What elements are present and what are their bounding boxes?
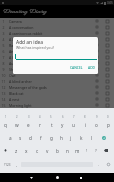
staticText: Black cat (9, 91, 96, 96)
button[interactable]: b (52, 144, 62, 157)
button[interactable]: w (11, 118, 22, 131)
button[interactable]: y (57, 118, 68, 131)
button[interactable]: o (91, 118, 102, 131)
button[interactable]: 8 (0, 60, 114, 66)
button[interactable]: Remove idea (106, 56, 109, 59)
button[interactable]: p (103, 118, 114, 131)
button[interactable]: Remove idea (106, 92, 109, 95)
button[interactable]: Home (52, 173, 62, 182)
button[interactable]: Remove idea (106, 44, 109, 47)
button[interactable]: q (0, 118, 11, 131)
button[interactable]: 10 (0, 72, 114, 78)
staticText: j (70, 135, 72, 141)
button[interactable]: Back (26, 173, 36, 182)
staticText: 13 (0, 91, 8, 96)
button[interactable]: 14 (0, 96, 114, 102)
button[interactable]: 6 (0, 48, 114, 54)
button[interactable]: 2 (0, 24, 114, 30)
button[interactable]: 15 (0, 102, 114, 108)
button[interactable]: Emoji (104, 158, 113, 171)
button[interactable]: 12 (0, 84, 114, 90)
button[interactable]: Recent apps (76, 173, 86, 182)
button[interactable]: 4 (0, 36, 114, 42)
button[interactable]: Remove idea (106, 20, 109, 23)
staticText: m (75, 148, 80, 154)
button[interactable]: Remove idea (106, 50, 109, 53)
button[interactable]: Enter (98, 131, 109, 144)
button[interactable]: s (15, 131, 25, 144)
button[interactable]: i (80, 118, 91, 131)
button[interactable]: ! (82, 144, 91, 157)
button[interactable]: 5 (0, 42, 114, 48)
button[interactable]: Remove idea (106, 98, 109, 101)
button[interactable]: Remove idea (106, 26, 109, 29)
staticText: q (4, 122, 7, 128)
button[interactable]: 9 (0, 66, 114, 72)
button[interactable]: Remove idea (106, 68, 109, 71)
button[interactable]: Shift (0, 144, 11, 157)
button[interactable]: ?123 (1, 158, 14, 171)
button[interactable]: v (42, 144, 52, 157)
button[interactable]: d (25, 131, 35, 144)
button[interactable]: Remove idea (106, 80, 109, 83)
staticText: Owl (9, 73, 96, 78)
button[interactable]: 11 (0, 78, 114, 84)
button[interactable]: u (68, 118, 79, 131)
button[interactable]: Remove idea (106, 32, 109, 35)
button[interactable]: g (46, 131, 56, 144)
button[interactable]: CANCEL (69, 64, 84, 70)
button[interactable]: j (66, 131, 76, 144)
button[interactable]: n (62, 144, 72, 157)
staticText: 2 (0, 25, 8, 30)
button[interactable]: 7 (0, 54, 114, 60)
button[interactable]: Remove idea (106, 62, 109, 65)
button[interactable]: 3 (0, 30, 114, 36)
button[interactable]: Remove idea (106, 104, 109, 107)
button[interactable]: ? (91, 144, 100, 157)
button[interactable]: a (5, 131, 15, 144)
staticText: h (60, 135, 63, 141)
button[interactable]: r (34, 118, 45, 131)
button[interactable]: Edit idea (96, 38, 98, 40)
button[interactable]: l (87, 131, 97, 144)
staticText: e (27, 122, 30, 128)
button[interactable]: z (11, 144, 21, 157)
button[interactable]: , (13, 158, 20, 171)
button[interactable]: e (23, 118, 34, 131)
button[interactable]: Remove idea (106, 86, 109, 89)
button[interactable]: ADD (87, 64, 96, 70)
button[interactable]: 13 (0, 90, 114, 96)
button[interactable]: k (76, 131, 86, 144)
button[interactable]: c (32, 144, 42, 157)
button[interactable]: Remove idea (106, 38, 109, 41)
staticText: n (66, 148, 69, 154)
button[interactable]: x (21, 144, 31, 157)
button[interactable]: t (46, 118, 57, 131)
button[interactable]: h (56, 131, 66, 144)
button[interactable]: Backspace (100, 144, 111, 157)
staticText: c (36, 148, 39, 154)
button[interactable]: f (36, 131, 46, 144)
button[interactable]: 1 (0, 18, 114, 24)
button[interactable]: m (72, 144, 82, 157)
button[interactable]: Remove idea (106, 74, 109, 77)
